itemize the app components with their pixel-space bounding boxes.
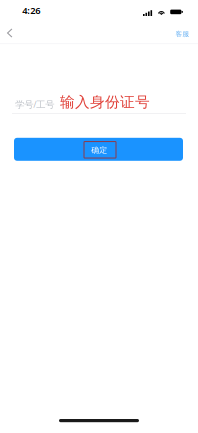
- staticText: 确定: [91, 145, 107, 155]
- staticText: 输入身份证号: [60, 93, 150, 111]
- button[interactable]: 客服: [169, 23, 195, 45]
- staticText: 4:26: [22, 4, 40, 16]
- button[interactable]: 确定: [14, 138, 183, 161]
- staticText: 学号/工号: [15, 98, 54, 110]
- button[interactable]: Back: [0, 22, 21, 44]
- staticText: 客服: [175, 30, 189, 38]
